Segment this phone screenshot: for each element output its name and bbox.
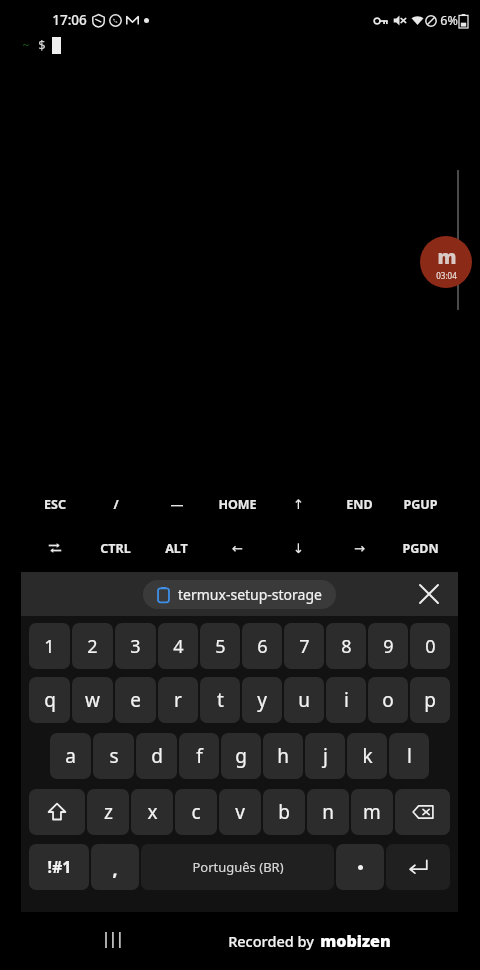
button[interactable]: m xyxy=(351,789,393,835)
button[interactable]: → xyxy=(329,532,390,564)
button[interactable]: j xyxy=(305,733,345,779)
button[interactable]: u xyxy=(284,677,324,723)
button[interactable]: 5 xyxy=(200,623,240,669)
button[interactable]: ESC xyxy=(24,488,85,520)
staticText: s xyxy=(109,743,119,769)
staticText: mobizen xyxy=(320,930,391,952)
button[interactable]: ↑ xyxy=(268,488,329,520)
staticText: d xyxy=(151,743,163,769)
button[interactable]: n xyxy=(307,789,349,835)
staticText: a xyxy=(65,743,76,769)
button[interactable]: 4 xyxy=(158,623,198,669)
button[interactable]: w xyxy=(72,677,113,723)
button[interactable]: ALT xyxy=(146,532,207,564)
button[interactable] xyxy=(336,844,384,890)
button[interactable]: Enter xyxy=(386,844,450,890)
button[interactable]: f xyxy=(179,733,219,779)
button[interactable]: — xyxy=(146,488,207,520)
button[interactable]: ↓ xyxy=(268,532,329,564)
staticText: / xyxy=(113,496,119,513)
staticText: ↑ xyxy=(293,497,304,512)
button[interactable]: END xyxy=(329,488,390,520)
button[interactable]: CTRL xyxy=(85,532,146,564)
button[interactable]: r xyxy=(158,677,198,723)
staticText: !#1 xyxy=(47,856,72,878)
staticText: x xyxy=(147,799,158,825)
button[interactable]: 7 xyxy=(284,623,324,669)
staticText: CTRL xyxy=(100,540,131,557)
button[interactable]: v xyxy=(219,789,261,835)
button[interactable]: PGDN xyxy=(390,532,451,564)
staticText: ← xyxy=(232,541,243,556)
staticText: 3 xyxy=(130,634,141,659)
button[interactable]: p xyxy=(410,677,450,723)
button[interactable]: k xyxy=(347,733,387,779)
button[interactable]: Recents xyxy=(102,930,126,950)
staticText: 17:06 xyxy=(52,11,87,29)
button[interactable]: 2 xyxy=(72,623,113,669)
staticText: ESC xyxy=(44,496,66,513)
button[interactable]: i xyxy=(326,677,366,723)
button[interactable]: termux-setup-storage xyxy=(143,580,336,609)
button[interactable]: Close suggestion xyxy=(414,579,444,609)
button[interactable]: Mobizen recorder xyxy=(420,236,472,288)
button[interactable]: x xyxy=(131,789,173,835)
staticText: PGUP xyxy=(403,496,438,513)
button[interactable]: 3 xyxy=(115,623,156,669)
button[interactable]: 1 xyxy=(29,623,70,669)
staticText: q xyxy=(44,687,56,713)
button[interactable]: / xyxy=(85,488,146,520)
button[interactable]: z xyxy=(87,789,129,835)
staticText: r xyxy=(174,687,182,713)
staticText: 7 xyxy=(299,634,310,659)
staticText: y xyxy=(257,687,267,713)
button[interactable]: Shift xyxy=(29,789,85,835)
button[interactable]: l xyxy=(389,733,429,779)
staticText: $ xyxy=(38,36,46,54)
staticText: termux-setup-storage xyxy=(178,585,322,604)
button[interactable]: c xyxy=(175,789,217,835)
staticText: o xyxy=(382,687,394,713)
button[interactable]: a xyxy=(50,733,91,779)
staticText: h xyxy=(277,743,289,769)
staticText: b xyxy=(278,799,290,825)
staticText: e xyxy=(130,687,141,713)
staticText: → xyxy=(354,541,365,556)
button[interactable]: o xyxy=(368,677,408,723)
button[interactable]: ← xyxy=(207,532,268,564)
staticText: END xyxy=(346,496,373,513)
staticText: 2 xyxy=(87,634,98,659)
button[interactable] xyxy=(24,532,85,564)
button[interactable]: !#1 xyxy=(29,844,89,890)
staticText: z xyxy=(104,799,113,825)
button[interactable]: , xyxy=(91,844,139,890)
staticText: , xyxy=(112,857,118,882)
button[interactable]: 6 xyxy=(242,623,282,669)
button[interactable]: t xyxy=(200,677,240,723)
staticText: HOME xyxy=(218,496,257,513)
button[interactable]: Backspace xyxy=(395,789,450,835)
staticText: PGDN xyxy=(402,540,439,557)
button[interactable]: h xyxy=(263,733,303,779)
staticText: i xyxy=(344,687,349,713)
button[interactable]: g xyxy=(221,733,261,779)
button[interactable]: 0 xyxy=(410,623,450,669)
staticText: n xyxy=(322,799,334,825)
button[interactable]: 8 xyxy=(326,623,366,669)
button[interactable]: Português (BR) xyxy=(141,844,334,890)
button[interactable]: y xyxy=(242,677,282,723)
button[interactable]: b xyxy=(263,789,305,835)
button[interactable]: e xyxy=(115,677,156,723)
button[interactable]: q xyxy=(29,677,70,723)
button[interactable]: HOME xyxy=(207,488,268,520)
staticText: m xyxy=(363,799,381,825)
staticText: 8 xyxy=(341,634,352,659)
button[interactable]: PGUP xyxy=(390,488,451,520)
staticText: 0 xyxy=(425,634,436,659)
button[interactable]: s xyxy=(93,733,134,779)
button[interactable]: d xyxy=(136,733,177,779)
staticText: t xyxy=(217,687,224,713)
button[interactable]: 9 xyxy=(368,623,408,669)
staticText: ~ xyxy=(22,36,30,54)
staticText: 4 xyxy=(173,634,184,659)
